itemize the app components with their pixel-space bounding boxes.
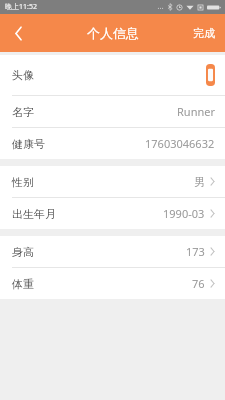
staticText: 性别 (12, 175, 34, 189)
button[interactable]: Back (0, 14, 36, 52)
staticText: 体重 (12, 277, 34, 291)
button[interactable]: 身高 (0, 236, 225, 267)
staticText: 健康号 (12, 137, 45, 151)
staticText: 名字 (12, 105, 34, 119)
staticText: 完成 (193, 26, 215, 40)
staticText: 男 (194, 175, 205, 189)
button[interactable]: 头像 (0, 55, 225, 95)
button[interactable]: 名字 (0, 96, 225, 127)
staticText: 头像 (12, 68, 34, 82)
staticText: 1990-03 (163, 206, 205, 221)
button[interactable]: 性别 (0, 166, 225, 197)
staticText: Runner (177, 104, 215, 119)
button[interactable]: 体重 (0, 268, 225, 299)
staticText: 173 (186, 244, 205, 259)
staticText: 出生年月 (12, 207, 56, 221)
staticText: 76 (192, 276, 205, 291)
button[interactable]: 健康号 (0, 128, 225, 159)
staticText: 晚上11:52 (5, 2, 37, 12)
button[interactable]: 完成 (183, 14, 225, 52)
button[interactable]: 出生年月 (0, 198, 225, 229)
staticText: 17603046632 (145, 136, 215, 151)
staticText: 身高 (12, 245, 34, 259)
staticText: 个人信息 (87, 25, 139, 41)
